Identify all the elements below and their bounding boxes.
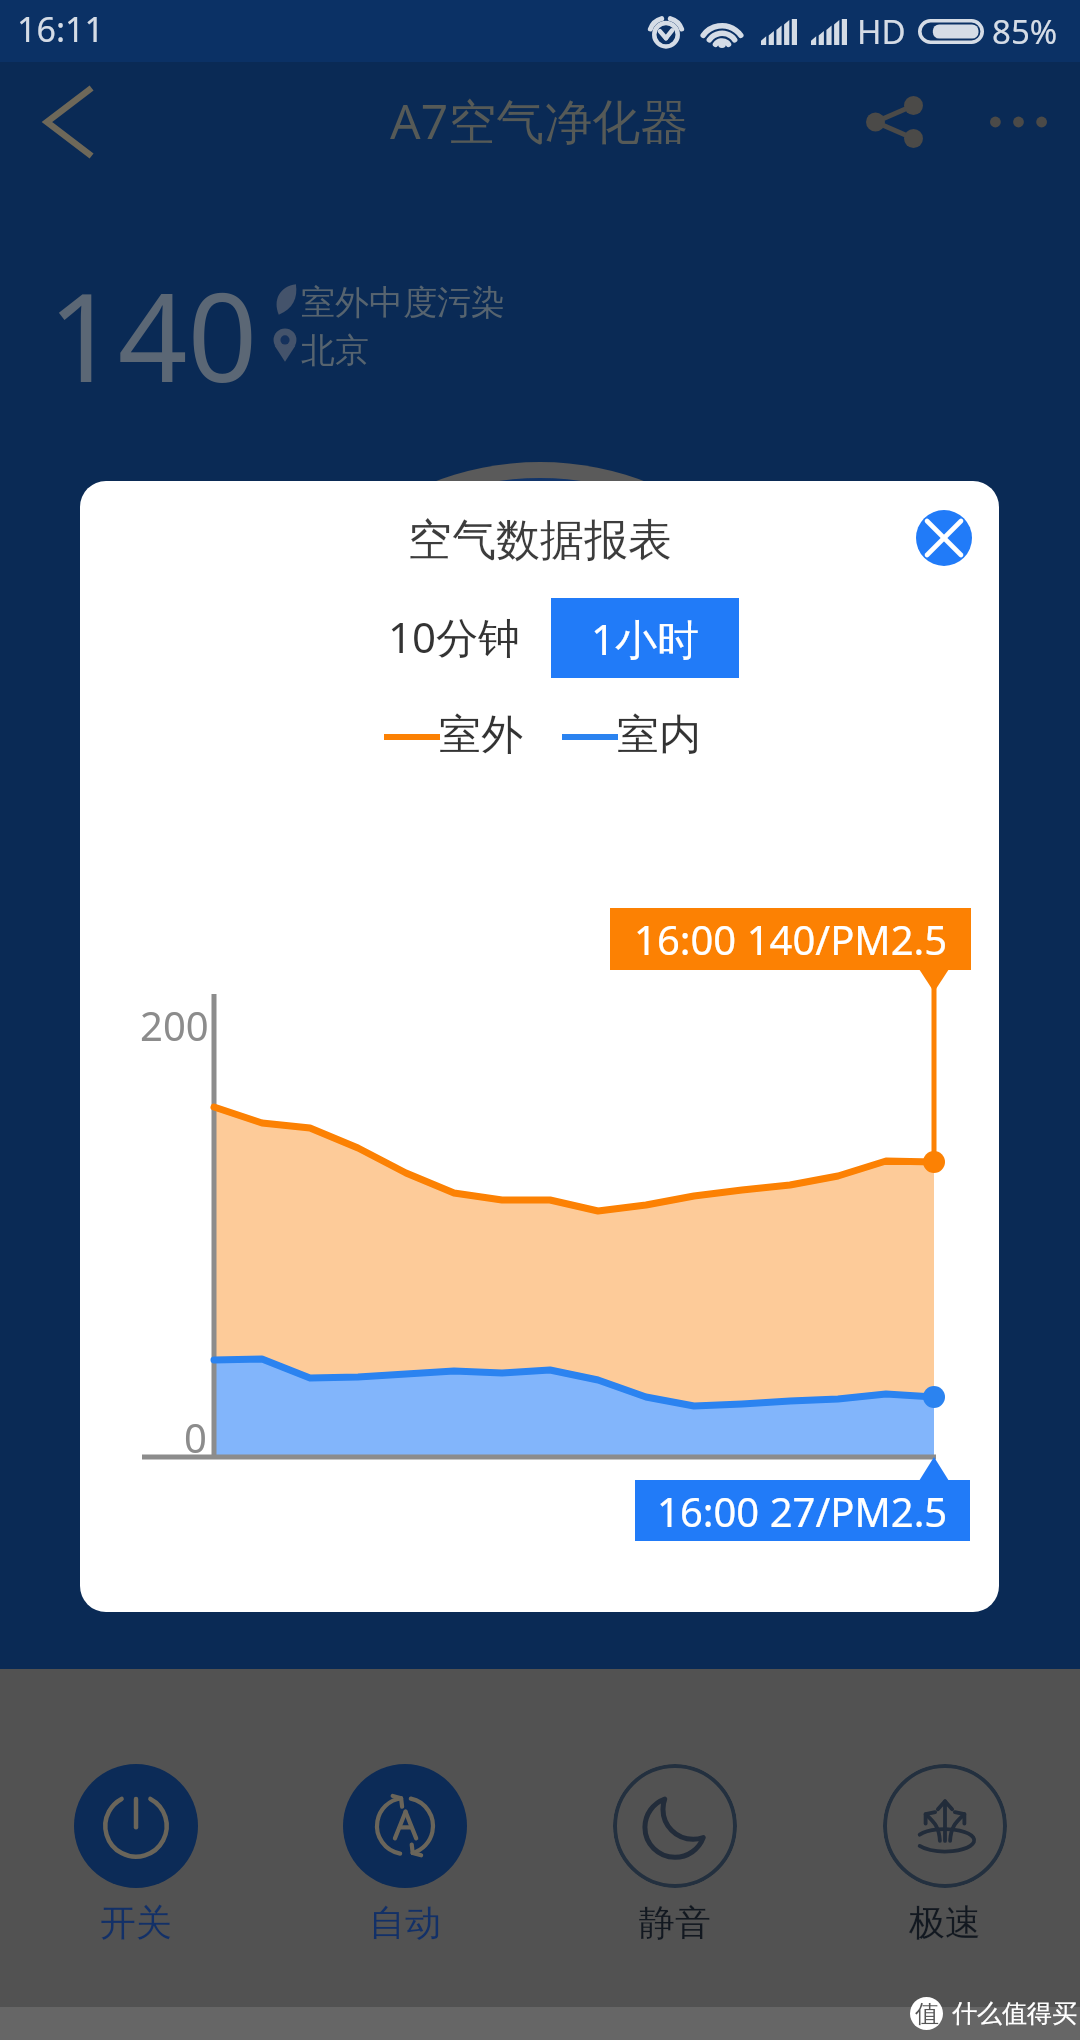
button[interactable]: More options: [970, 74, 1066, 170]
staticText: 0: [184, 1410, 207, 1464]
staticText: 16:00 140/PM2.5: [634, 912, 948, 966]
staticText: 室内: [617, 709, 701, 762]
staticText: 16:00 27/PM2.5: [657, 1484, 948, 1538]
staticText: HD: [857, 9, 906, 54]
staticText: 16:11: [17, 6, 104, 52]
staticText: 1小时: [591, 610, 700, 667]
button[interactable]: 静音: [613, 1764, 737, 1959]
button[interactable]: 开关: [74, 1764, 198, 1959]
button[interactable]: 1小时: [551, 598, 739, 678]
staticText: 自动: [369, 1900, 441, 1945]
staticText: 北京: [301, 329, 369, 372]
button[interactable]: 自动: [343, 1764, 467, 1959]
staticText: 140: [48, 252, 258, 418]
button[interactable]: Back: [20, 74, 116, 170]
staticText: 室外: [439, 709, 523, 762]
staticText: 200: [140, 998, 209, 1052]
button[interactable]: 10分钟: [380, 600, 529, 673]
staticText: 什么值得买: [952, 1998, 1077, 2029]
staticText: 静音: [639, 1900, 711, 1945]
staticText: 室外中度污染: [301, 281, 505, 324]
staticText: 10分钟: [388, 608, 521, 665]
staticText: 开关: [100, 1900, 172, 1945]
staticText: 85%: [992, 9, 1058, 54]
staticText: 极速: [909, 1900, 981, 1945]
button[interactable]: Share: [846, 74, 942, 170]
staticText: 值: [915, 1999, 939, 2029]
staticText: A7空气净化器: [390, 88, 689, 154]
staticText: 空气数据报表: [408, 513, 672, 568]
button[interactable]: Close: [916, 510, 972, 566]
button[interactable]: 极速: [883, 1764, 1007, 1959]
